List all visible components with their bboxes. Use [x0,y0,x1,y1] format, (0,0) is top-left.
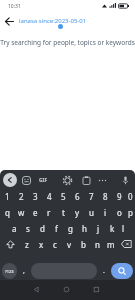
button[interactable] [95,173,109,187]
staticText: z [25,239,29,250]
staticText: d [40,223,45,234]
staticText: 8 [103,191,108,202]
button[interactable] [0,236,20,252]
staticText: o [117,207,122,218]
staticText: 3 [33,191,38,202]
staticText: i [104,207,107,218]
button[interactable] [111,263,133,279]
staticText: l [122,223,125,234]
staticText: 4 [47,191,52,202]
staticText: s [26,223,30,234]
staticText: 5 [61,191,66,202]
button[interactable]: lanasa since:2023-05-01 [0,12,135,30]
button[interactable] [45,280,90,300]
staticText: t [62,207,65,218]
button[interactable] [31,263,97,279]
staticText: x [39,239,44,250]
button[interactable] [118,173,132,187]
staticText: j [97,223,100,234]
button[interactable] [118,236,135,252]
button[interactable] [19,173,33,187]
staticText: v [67,239,72,250]
staticText: m [107,239,115,250]
staticText: . [103,266,105,276]
staticText: lanasa since:2023-05-01 [19,17,87,25]
staticText: 1 [5,191,10,202]
staticText: 10:31 [8,3,21,10]
staticText: 0 [128,191,133,202]
button[interactable] [60,173,74,187]
staticText: u [89,207,94,218]
staticText: , [23,266,25,276]
staticText: q [5,207,10,218]
staticText: r [47,207,51,218]
staticText: 7 [89,191,94,202]
staticText: GIF [39,177,48,184]
staticText: a [12,223,17,234]
staticText: 9 [117,191,122,202]
staticText: f [55,223,58,234]
staticText: y [75,207,80,218]
staticText: n [95,239,100,250]
button[interactable]: GIF [37,173,49,187]
staticText: g [68,223,73,234]
button[interactable]: , [17,262,31,279]
button[interactable] [79,173,93,187]
staticText: h [82,223,87,234]
button[interactable] [90,280,135,300]
staticText: p [128,207,133,218]
staticText: k [110,223,115,234]
staticText: b [81,239,86,250]
staticText: 6 [75,191,80,202]
button[interactable] [3,173,17,187]
staticText: w [18,207,25,218]
staticText: e [33,207,38,218]
staticText: 2 [19,191,24,202]
staticText: c [53,239,57,250]
button[interactable]: . [97,262,111,279]
staticText: ?123 [5,269,14,274]
staticText: Try searching for people, topics or keyw… [0,38,135,47]
button[interactable] [0,280,45,300]
button[interactable] [0,12,18,30]
button[interactable]: ?123 [2,263,17,279]
